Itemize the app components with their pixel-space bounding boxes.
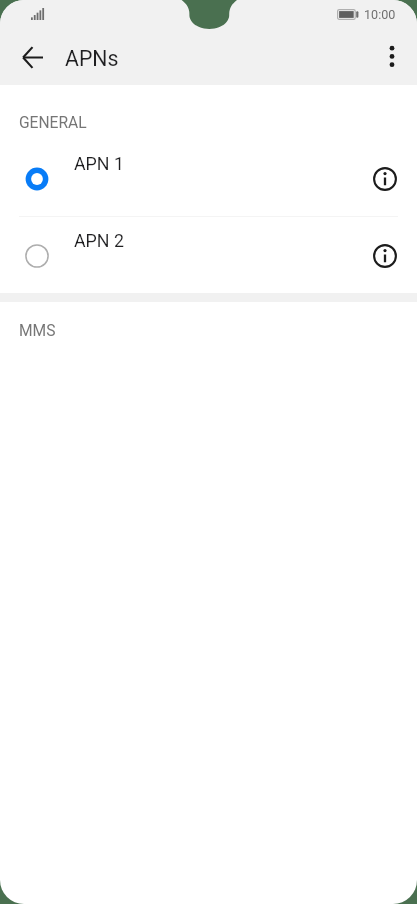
staticText: GENERAL xyxy=(19,114,87,132)
button[interactable]: APN 2 xyxy=(0,217,417,294)
staticText: APN 2 xyxy=(74,230,124,251)
button[interactable]: Edit APN 1 xyxy=(362,156,408,202)
staticText: APNs xyxy=(65,46,119,71)
staticText: MMS xyxy=(19,322,56,340)
button[interactable]: APN 1 xyxy=(0,140,417,216)
button[interactable]: Navigate up xyxy=(11,36,53,78)
button[interactable]: More options xyxy=(369,35,414,80)
button[interactable]: Edit APN 2 xyxy=(362,233,408,279)
staticText: 10:00 xyxy=(364,7,396,22)
staticText: APN 1 xyxy=(74,153,124,174)
